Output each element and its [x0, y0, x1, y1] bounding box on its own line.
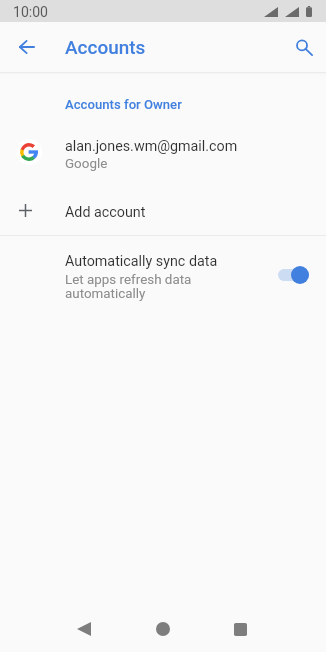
button[interactable]: Search — [282, 25, 326, 69]
staticText: 10:00 — [13, 4, 48, 20]
staticText: Google — [65, 156, 108, 172]
staticText: Accounts — [65, 36, 146, 58]
staticText: Add account — [65, 204, 146, 221]
button[interactable]: Accounts for Owner — [0, 97, 326, 112]
button[interactable]: Navigate up — [5, 25, 49, 69]
button[interactable]: Back — [60, 607, 108, 651]
button[interactable]: Recent apps — [216, 607, 264, 651]
button[interactable]: Automatically sync data — [0, 253, 326, 299]
button[interactable]: Add account — [0, 204, 326, 221]
staticText: Automatically sync data — [65, 253, 218, 270]
staticText: Accounts for Owner — [65, 97, 182, 112]
button[interactable]: alan.jones.wm@gmail.com — [0, 138, 326, 171]
button[interactable]: Home — [139, 607, 187, 651]
staticText: alan.jones.wm@gmail.com — [65, 138, 238, 155]
staticText: Let apps refresh data automatically — [65, 272, 192, 301]
